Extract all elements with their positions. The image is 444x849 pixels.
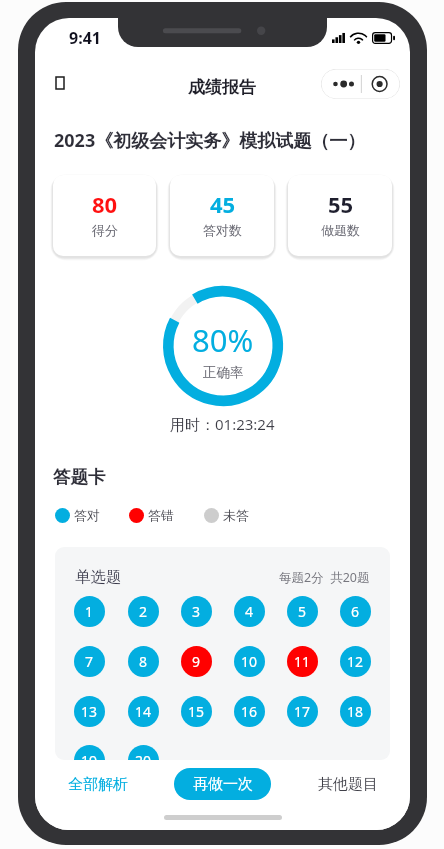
button[interactable]: 10: [234, 646, 265, 677]
button[interactable]: 55: [288, 175, 392, 256]
button[interactable]: 7: [74, 646, 105, 677]
staticText: 55: [328, 189, 354, 219]
button[interactable]: 8: [128, 646, 159, 677]
button[interactable]: 80: [53, 175, 156, 256]
staticText: 未答: [223, 507, 249, 523]
button[interactable]: 全部解析: [35, 761, 160, 807]
staticText: 15: [188, 702, 205, 721]
staticText: 每题2分 共20题: [279, 569, 370, 586]
button[interactable]: 其他题目: [285, 761, 410, 807]
staticText: 10: [241, 652, 258, 671]
staticText: 7: [85, 652, 94, 671]
staticText: 9: [192, 652, 201, 671]
staticText: 8: [139, 652, 148, 671]
button[interactable]: 13: [74, 696, 105, 727]
staticText: 20: [135, 751, 152, 760]
button[interactable]: 15: [181, 696, 212, 727]
staticText: 答题卡: [53, 466, 106, 488]
staticText: 1: [85, 602, 94, 621]
staticText: 其他题目: [318, 775, 378, 794]
staticText: 用时：01:23:24: [170, 414, 275, 434]
button[interactable]: 再做一次: [174, 768, 271, 800]
staticText: 正确率: [203, 364, 244, 381]
staticText: 16: [241, 702, 258, 721]
button[interactable]: 答对: [55, 507, 100, 523]
staticText: 4: [245, 602, 254, 621]
staticText: 做题数: [321, 222, 360, 238]
staticText: 80%: [192, 319, 254, 361]
staticText: 单选题: [75, 567, 122, 587]
staticText: 9:41: [69, 27, 101, 49]
button[interactable]: More options: [321, 69, 400, 99]
staticText: 2023《初级会计实务》模拟试题（一）: [54, 128, 366, 153]
staticText: 再做一次: [193, 775, 253, 794]
button[interactable]: 16: [234, 696, 265, 727]
staticText: 答对数: [203, 222, 242, 238]
button[interactable]: 45: [170, 175, 274, 256]
staticText: 全部解析: [68, 775, 128, 794]
button[interactable]: 1: [74, 596, 105, 627]
staticText: 11: [294, 652, 311, 671]
staticText: 3: [192, 602, 201, 621]
staticText: 成绩报告: [188, 77, 256, 98]
button[interactable]: 6: [340, 596, 371, 627]
button[interactable]: 12: [340, 646, 371, 677]
staticText: 13: [81, 702, 98, 721]
button[interactable]: 14: [128, 696, 159, 727]
staticText: 17: [294, 702, 311, 721]
button[interactable]: 未答: [204, 507, 249, 523]
staticText: 6: [351, 602, 360, 621]
button[interactable]: Back: [44, 67, 76, 99]
staticText: 19: [81, 751, 98, 760]
staticText: 45: [210, 189, 236, 219]
button[interactable]: 5: [287, 596, 318, 627]
staticText: 5: [298, 602, 307, 621]
button[interactable]: 11: [287, 646, 318, 677]
staticText: 14: [135, 702, 152, 721]
button[interactable]: 9: [181, 646, 212, 677]
button[interactable]: 18: [340, 696, 371, 727]
staticText: 得分: [92, 222, 118, 238]
staticText: 12: [347, 652, 364, 671]
button[interactable]: 4: [234, 596, 265, 627]
staticText: 答对: [74, 507, 100, 523]
button[interactable]: 2: [128, 596, 159, 627]
staticText: 80: [92, 189, 118, 219]
button[interactable]: 19: [74, 745, 105, 760]
staticText: 答错: [148, 507, 174, 523]
staticText: 18: [347, 702, 364, 721]
button[interactable]: 20: [128, 745, 159, 760]
staticText: 2: [139, 602, 148, 621]
button[interactable]: 17: [287, 696, 318, 727]
button[interactable]: 3: [181, 596, 212, 627]
button[interactable]: 答错: [129, 507, 174, 523]
